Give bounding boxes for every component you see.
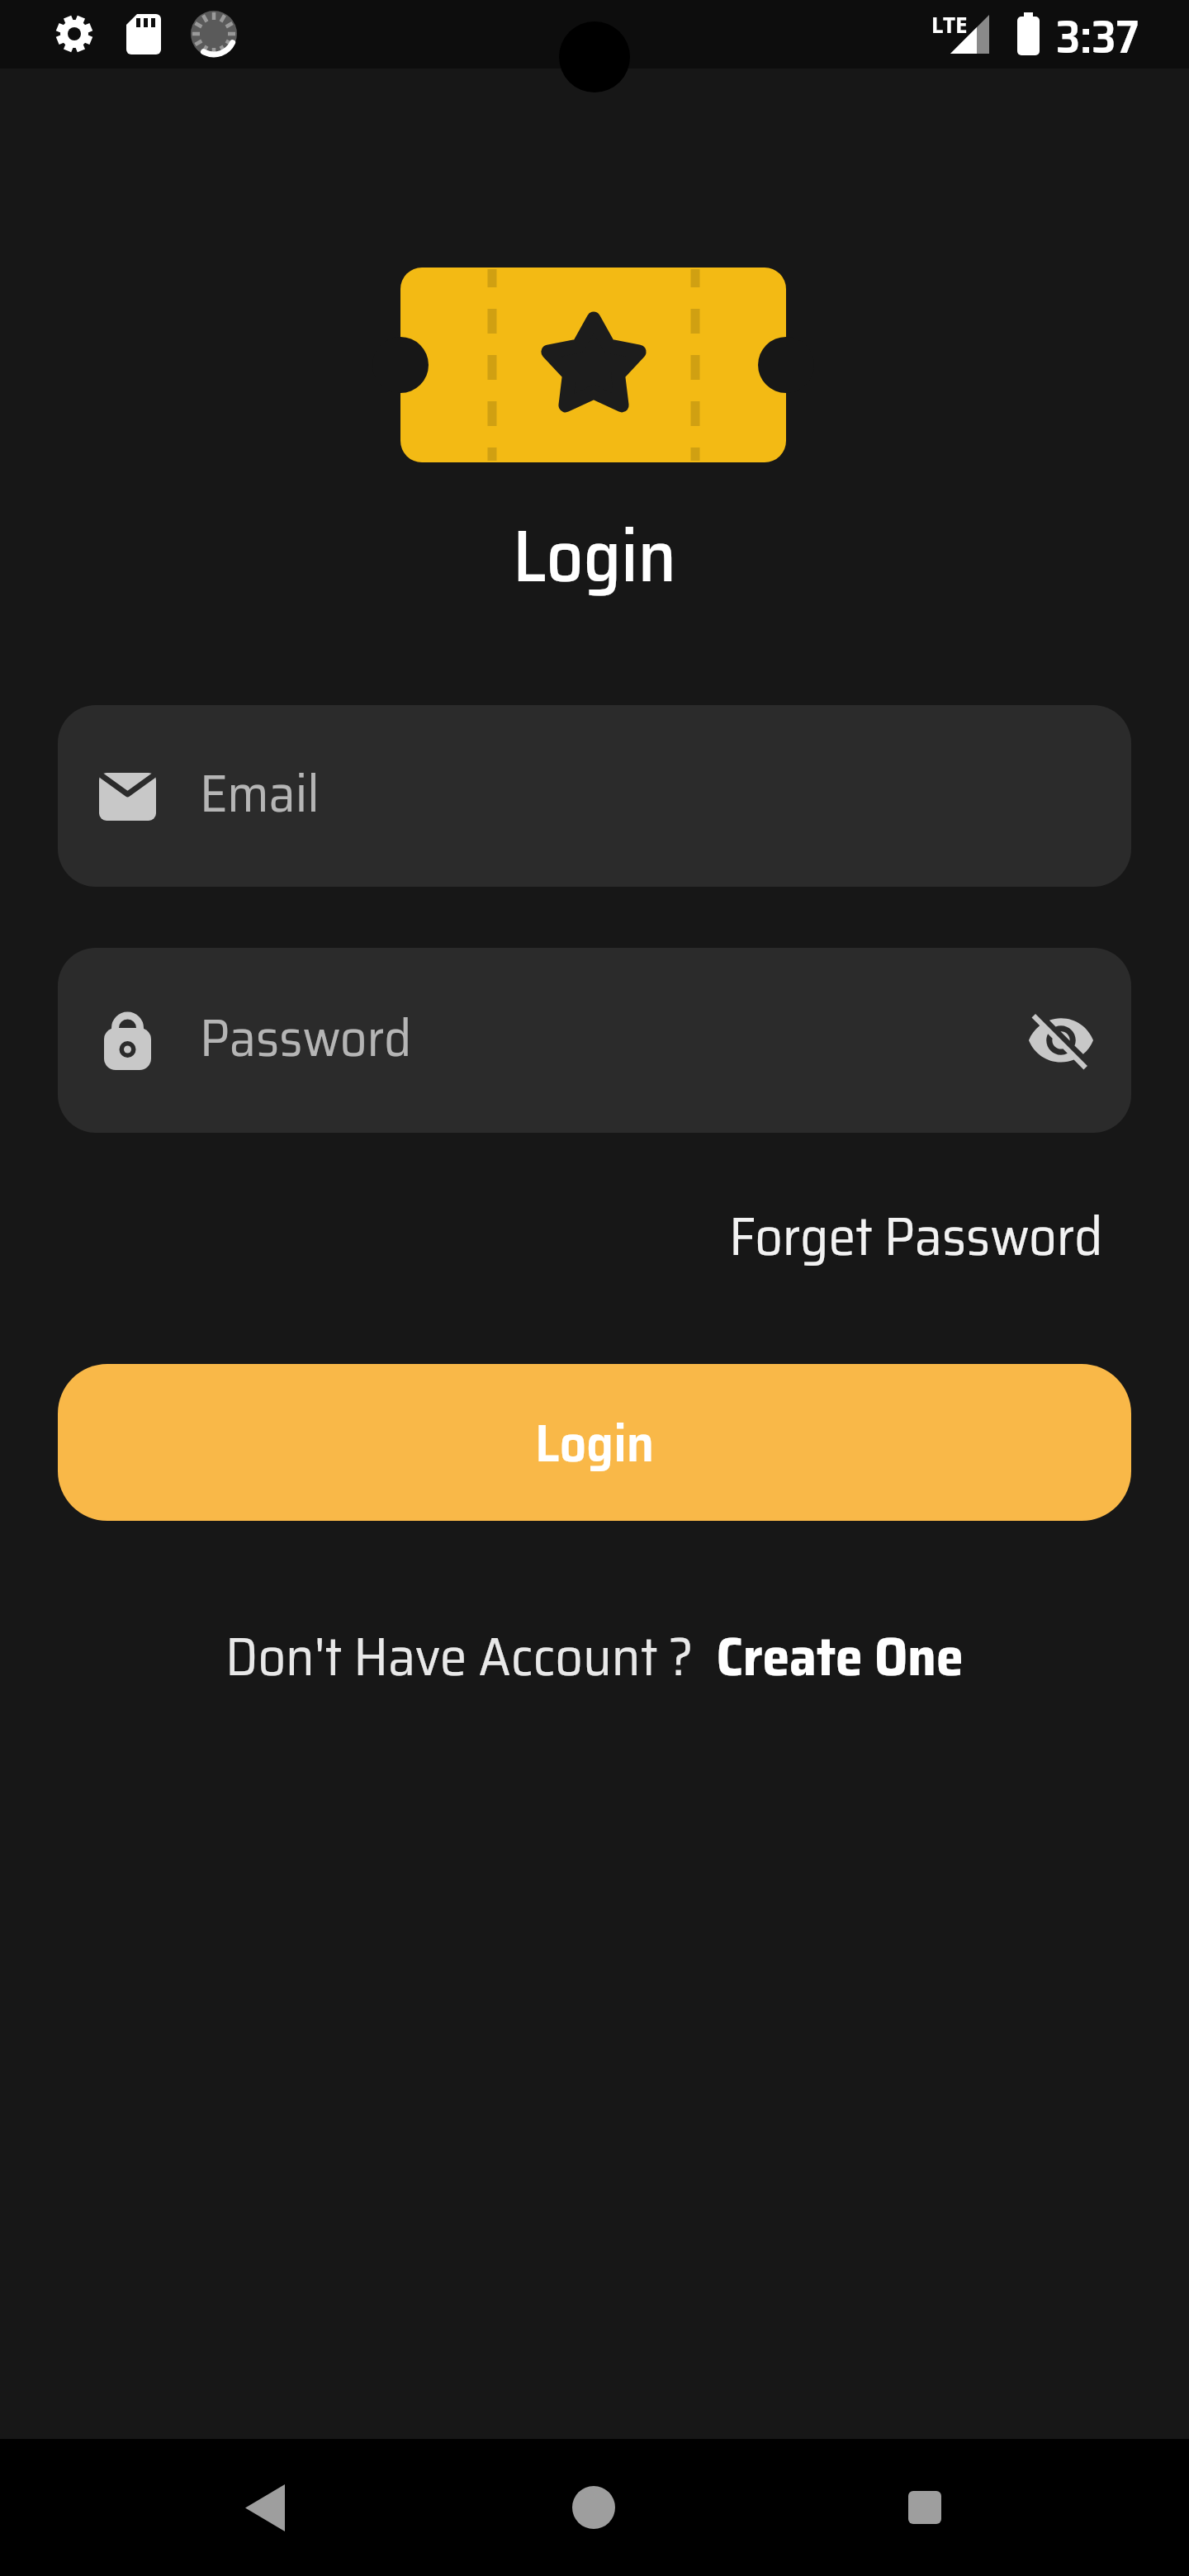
button[interactable]: Login (58, 1364, 1131, 1521)
button[interactable] (206, 2450, 322, 2565)
button[interactable] (867, 2450, 983, 2565)
staticText: 3:37 (1056, 0, 1139, 69)
staticText: Forget Password (729, 1193, 1103, 1279)
staticText: Email (200, 751, 320, 835)
staticText: Don't Have Account ? Create One (225, 1613, 964, 1699)
button[interactable]: Password (58, 948, 1131, 1133)
button[interactable] (536, 2450, 651, 2565)
button[interactable]: Forget Password (729, 1193, 1103, 1279)
button[interactable]: Email (58, 705, 1131, 887)
button[interactable]: Don't Have Account ? Create One (225, 1613, 964, 1699)
staticText: Login (535, 1401, 655, 1485)
staticText: Password (200, 996, 412, 1079)
staticText: LTE (931, 10, 968, 39)
staticText: Login (513, 499, 677, 613)
